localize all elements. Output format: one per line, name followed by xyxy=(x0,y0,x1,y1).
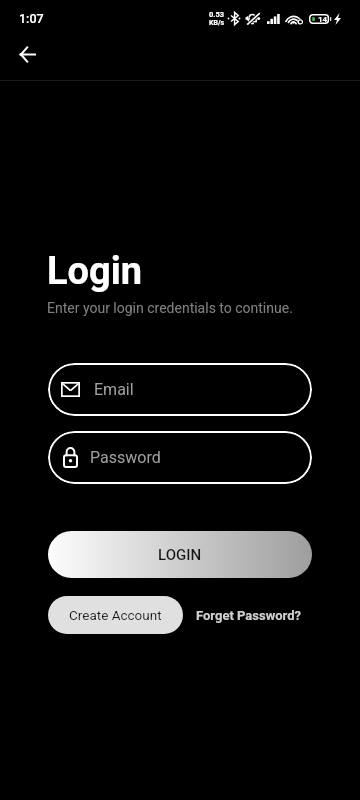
staticText: Password xyxy=(90,448,161,467)
staticText: 14 xyxy=(318,15,328,24)
staticText: Create Account xyxy=(69,607,162,623)
staticText: KB/s xyxy=(209,19,225,27)
button[interactable]: Create Account xyxy=(48,596,183,634)
staticText: LOGIN xyxy=(158,546,202,564)
staticText: 1:07 xyxy=(19,11,44,26)
staticText: 0.53 xyxy=(209,10,225,19)
staticText: Enter your login credentials to continue… xyxy=(47,300,293,316)
staticText: Forget Password? xyxy=(196,608,301,623)
staticText: Login xyxy=(47,249,143,294)
button[interactable]: Forget Password? xyxy=(188,596,309,634)
button[interactable]: Password xyxy=(48,431,312,484)
button[interactable]: Email xyxy=(48,363,312,416)
button[interactable]: Back xyxy=(9,36,45,72)
staticText: Email xyxy=(94,380,134,399)
button[interactable]: LOGIN xyxy=(48,531,312,578)
